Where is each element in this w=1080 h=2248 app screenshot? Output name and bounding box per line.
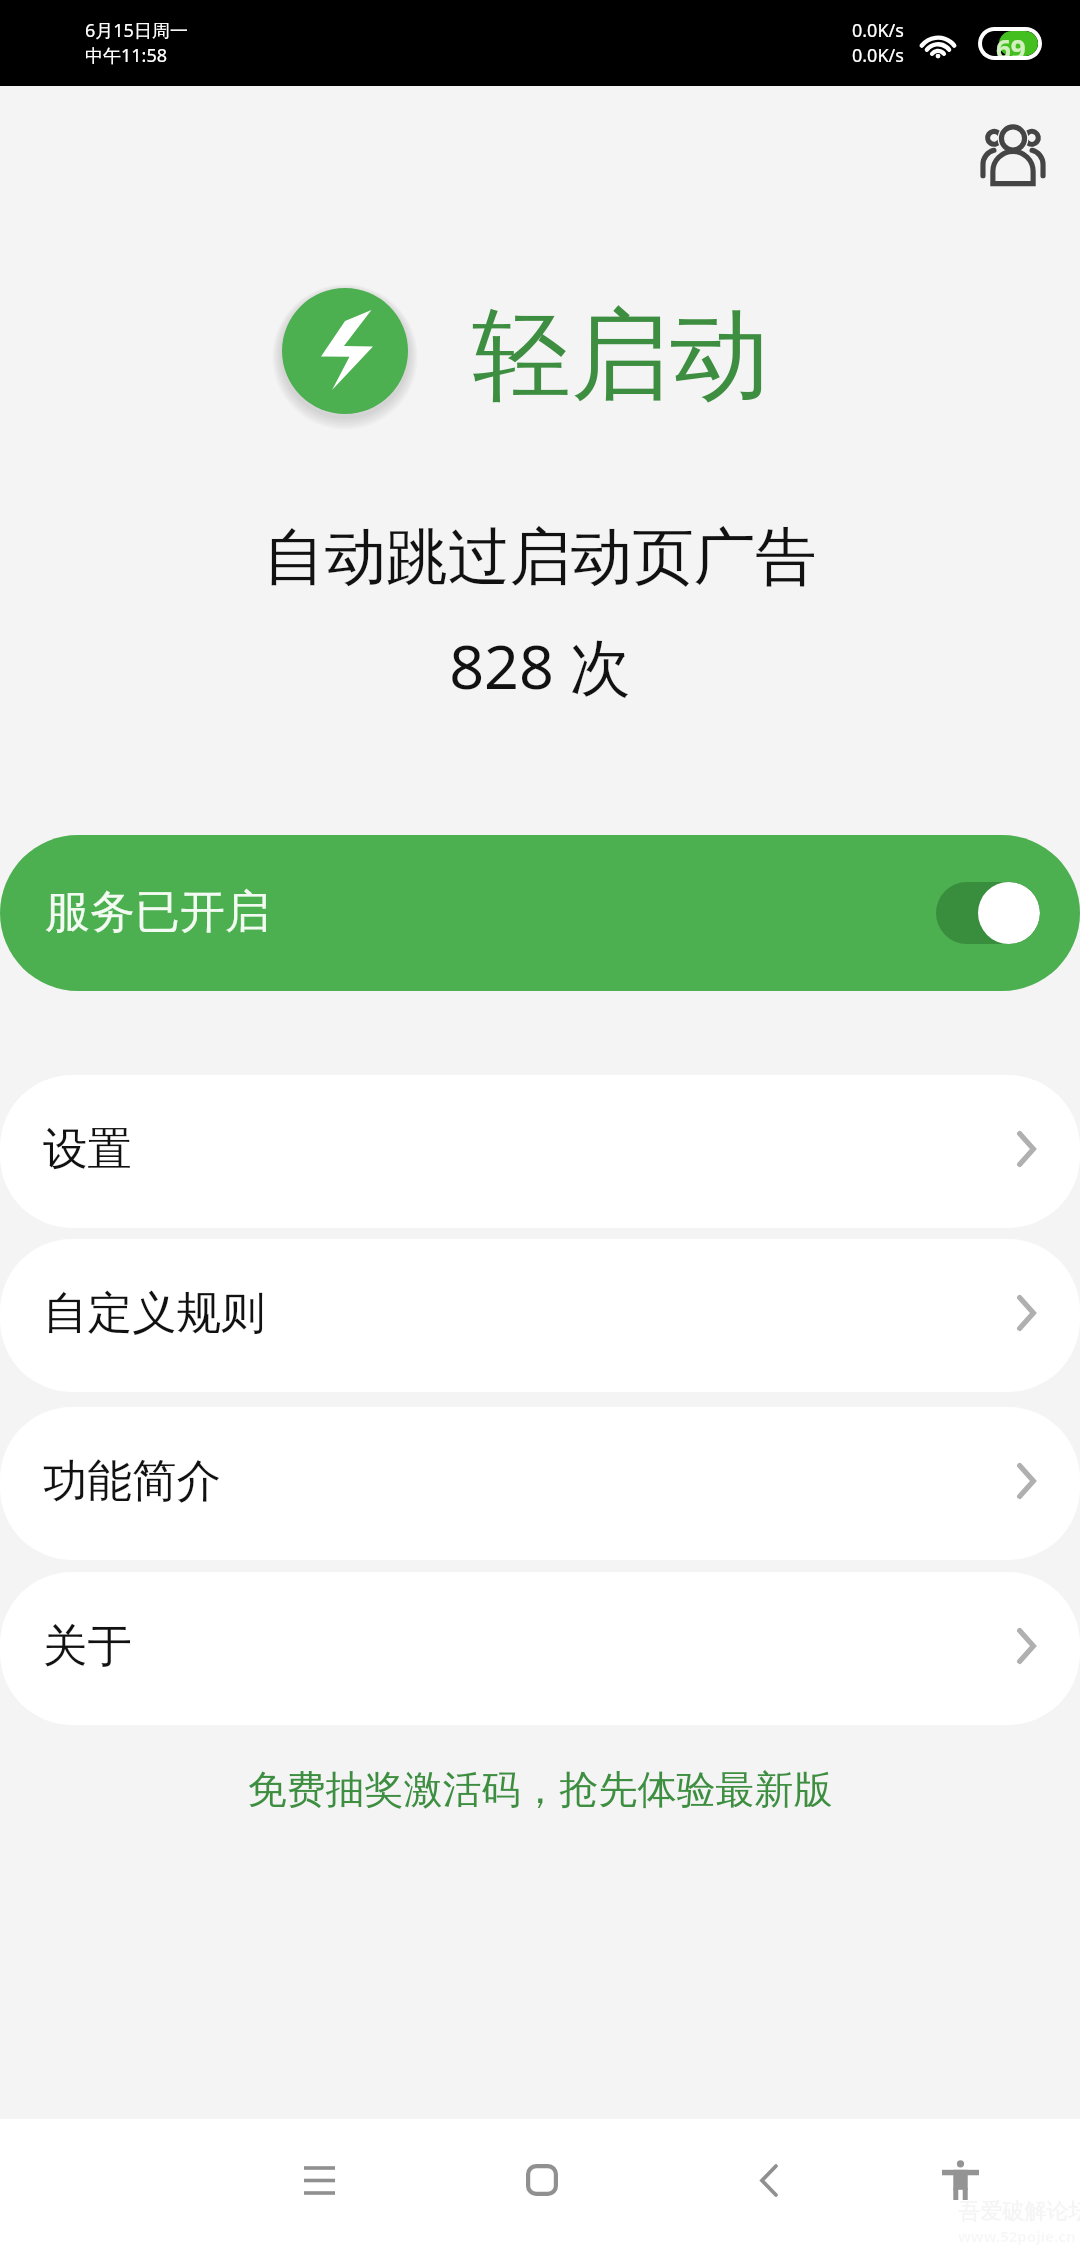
staticText: 6月15日周一: [85, 18, 188, 43]
button[interactable]: Home: [492, 2130, 592, 2230]
staticText: 轻启动: [472, 294, 769, 419]
staticText: 中午11:58: [85, 43, 168, 68]
staticText: 0.0K/s: [852, 18, 904, 43]
staticText: 0.0K/s: [852, 43, 904, 68]
button[interactable]: 设置: [0, 1075, 1080, 1228]
staticText: 服务已开启: [45, 884, 270, 941]
staticText: 828 次: [0, 624, 1080, 707]
staticText: 自动跳过启动页广告: [0, 519, 1080, 596]
staticText: 69: [996, 31, 1026, 56]
button[interactable]: 关于: [0, 1572, 1080, 1725]
button[interactable]: 服务已开启: [0, 835, 1080, 991]
staticText: 设置: [43, 1121, 132, 1177]
button[interactable]: 功能简介: [0, 1407, 1080, 1560]
button[interactable]: 免费抽奖激活码，抢先体验最新版: [0, 1765, 1080, 1814]
staticText: 自定义规则: [43, 1285, 266, 1341]
staticText: 关于: [43, 1618, 132, 1674]
staticText: 功能简介: [43, 1453, 221, 1509]
button[interactable]: Back: [719, 2130, 819, 2230]
button[interactable]: Accessibility: [910, 2130, 1010, 2230]
staticText: 吾爱破解论坛: [958, 2198, 1080, 2226]
button[interactable]: 自定义规则: [0, 1239, 1080, 1392]
button[interactable]: Group: [969, 108, 1057, 196]
button[interactable]: Menu: [269, 2130, 369, 2230]
